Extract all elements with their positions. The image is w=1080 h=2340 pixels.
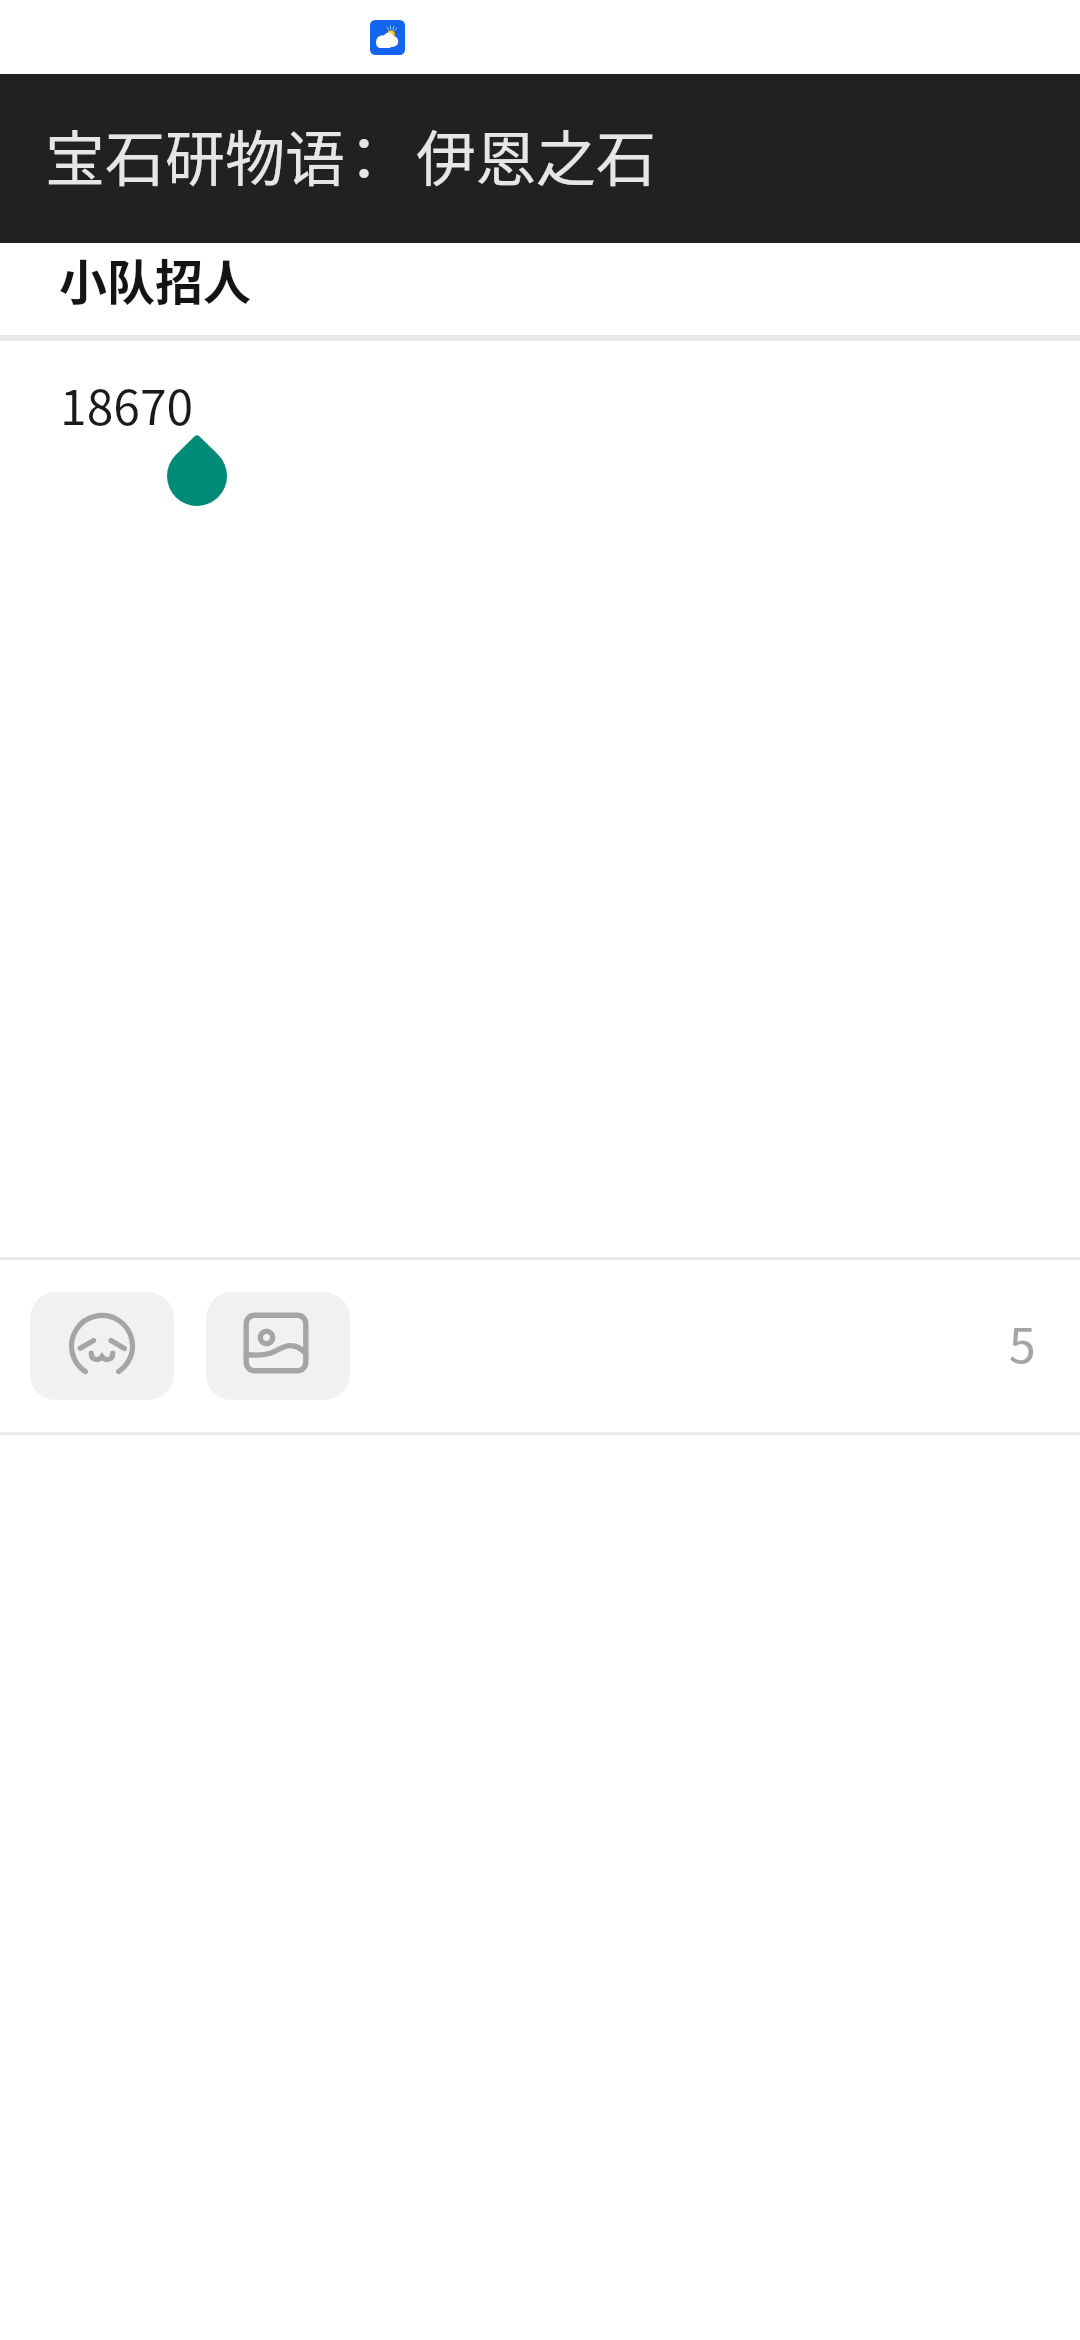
staticText: 小队招人 (59, 244, 252, 314)
staticText: 5 (1009, 1307, 1036, 1377)
staticText: 伊恩之石 (416, 111, 656, 198)
staticText: ： (334, 111, 394, 198)
button[interactable]: 18670 (0, 341, 1080, 1257)
staticText: 宝石研物语 (45, 111, 345, 198)
staticText: 18670 (60, 369, 194, 439)
button[interactable]: 5 (1009, 1260, 1080, 1432)
other: Water drop (167, 434, 227, 506)
button[interactable]: Emoji (30, 1292, 174, 1400)
button[interactable]: 小队招人 (0, 243, 1080, 335)
button[interactable]: Add image (206, 1292, 350, 1400)
